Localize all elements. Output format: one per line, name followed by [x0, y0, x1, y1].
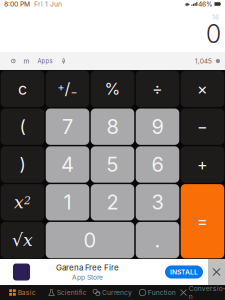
button[interactable]: Currency: [90, 285, 135, 300]
staticText: Scientific: [57, 288, 87, 297]
button[interactable]: 9: [135, 108, 180, 146]
button[interactable]: .: [135, 221, 180, 259]
button[interactable]: Voice input: [56, 52, 72, 70]
staticText: −: [197, 117, 208, 136]
staticText: ): [19, 154, 25, 175]
staticText: =: [197, 211, 208, 231]
staticText: Garena Free Fire: [56, 263, 119, 272]
staticText: 0: [206, 19, 221, 49]
button[interactable]: √x: [0, 221, 45, 259]
staticText: Fri 1 Jun: [30, 0, 62, 8]
button[interactable]: 1: [45, 183, 90, 221]
button[interactable]: 6: [135, 146, 180, 183]
staticText: 1: [63, 190, 71, 214]
staticText: 9: [151, 115, 163, 139]
staticText: (: [19, 116, 25, 137]
staticText: 0: [83, 228, 96, 252]
staticText: 7: [62, 115, 73, 139]
button[interactable]: ÷: [135, 70, 180, 108]
button[interactable]: x2: [0, 183, 45, 221]
button[interactable]: ×: [180, 70, 225, 108]
staticText: 5: [106, 152, 118, 177]
button[interactable]: 5: [90, 146, 135, 183]
staticText: INSTALL: [170, 268, 198, 276]
staticText: ×: [197, 79, 208, 99]
button[interactable]: ): [0, 146, 45, 183]
button[interactable]: Scientific: [45, 285, 90, 300]
button[interactable]: 4: [45, 146, 90, 183]
staticText: Currency: [102, 288, 132, 297]
button[interactable]: Close ad: [208, 259, 225, 285]
button[interactable]: 0: [45, 221, 135, 259]
staticText: Basic: [18, 288, 36, 297]
button[interactable]: (: [0, 108, 45, 146]
staticText: 1,045: [195, 57, 212, 65]
staticText: 8: [106, 115, 118, 139]
button[interactable]: Apps: [35, 52, 56, 70]
button[interactable]: =: [180, 183, 225, 259]
button[interactable]: c: [0, 70, 45, 108]
staticText: .: [154, 228, 160, 252]
button[interactable]: Memory: [19, 52, 35, 70]
staticText: 46%: [198, 0, 213, 8]
staticText: 6: [151, 152, 163, 177]
staticText: 8:00 PM: [4, 0, 30, 8]
staticText: Apps: [38, 57, 53, 65]
staticText: c: [18, 79, 27, 99]
button[interactable]: 8: [90, 108, 135, 146]
staticText: 16: [212, 13, 219, 21]
staticText: %: [104, 79, 120, 99]
button[interactable]: Function: [135, 285, 180, 300]
button[interactable]: History: [8, 52, 19, 70]
staticText: +: [197, 155, 208, 174]
staticText: Function: [148, 288, 176, 297]
staticText: 2: [106, 190, 118, 214]
button[interactable]: 7: [45, 108, 90, 146]
staticText: x2: [14, 192, 31, 212]
staticText: App Store: [72, 273, 103, 281]
button[interactable]: Conversion: [180, 285, 225, 300]
staticText: +/−: [57, 79, 77, 99]
button[interactable]: −: [180, 108, 225, 146]
button[interactable]: +: [180, 146, 225, 183]
button[interactable]: +/−: [45, 70, 90, 108]
button[interactable]: %: [90, 70, 135, 108]
staticText: m: [24, 57, 30, 65]
staticText: ÷: [152, 79, 163, 99]
button[interactable]: INSTALL: [165, 265, 203, 279]
staticText: 3: [151, 190, 163, 214]
staticText: 4: [61, 152, 74, 177]
button[interactable]: 2: [90, 183, 135, 221]
button[interactable]: Basic: [0, 285, 45, 300]
staticText: Conversion: [189, 284, 225, 300]
staticText: √x: [12, 230, 33, 250]
button[interactable]: 3: [135, 183, 180, 221]
